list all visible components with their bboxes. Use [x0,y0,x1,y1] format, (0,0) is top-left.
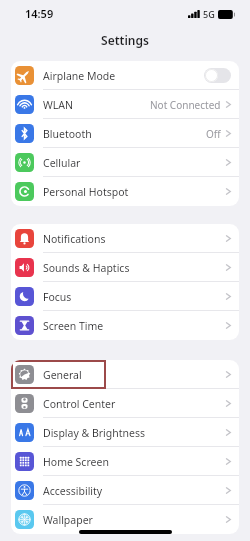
button[interactable]: Home Screen [11,447,239,476]
button[interactable]: Notifications [11,224,239,253]
button[interactable]: Display & Brightness [11,418,239,447]
button[interactable]: Accessibility [11,476,239,505]
staticText: Focus [43,290,226,304]
button[interactable]: Sounds & Haptics [11,253,239,282]
button[interactable]: Cellular [11,148,239,177]
button[interactable]: Wallpaper [11,505,239,534]
staticText: General [43,368,226,382]
button[interactable]: Airplane Mode [11,61,239,90]
staticText: Off [206,127,221,141]
staticText: Screen Time [43,319,226,333]
staticText: Sounds & Haptics [43,261,226,275]
button[interactable]: Airplane Mode toggle [204,68,231,83]
staticText: Airplane Mode [43,69,204,83]
staticText: Cellular [43,156,226,170]
staticText: Control Center [43,397,226,411]
staticText: Not Connected [150,98,221,112]
staticText: Home Screen [43,455,226,469]
button[interactable]: Bluetooth [11,119,239,148]
staticText: Accessibility [43,484,226,498]
staticText: 14:59 [25,6,54,21]
staticText: Personal Hotspot [43,185,226,199]
button[interactable]: WLAN [11,90,239,119]
staticText: Bluetooth [43,127,206,141]
staticText: Notifications [43,232,226,246]
staticText: Wallpaper [43,513,226,527]
button[interactable]: Focus [11,282,239,311]
staticText: Settings [101,32,149,48]
staticText: Display & Brightness [43,426,226,440]
staticText: WLAN [43,98,150,112]
button[interactable]: Screen Time [11,311,239,340]
button[interactable]: General [11,360,239,389]
button[interactable]: Personal Hotspot [11,177,239,206]
button[interactable]: Control Center [11,389,239,418]
staticText: 5G [203,8,215,20]
